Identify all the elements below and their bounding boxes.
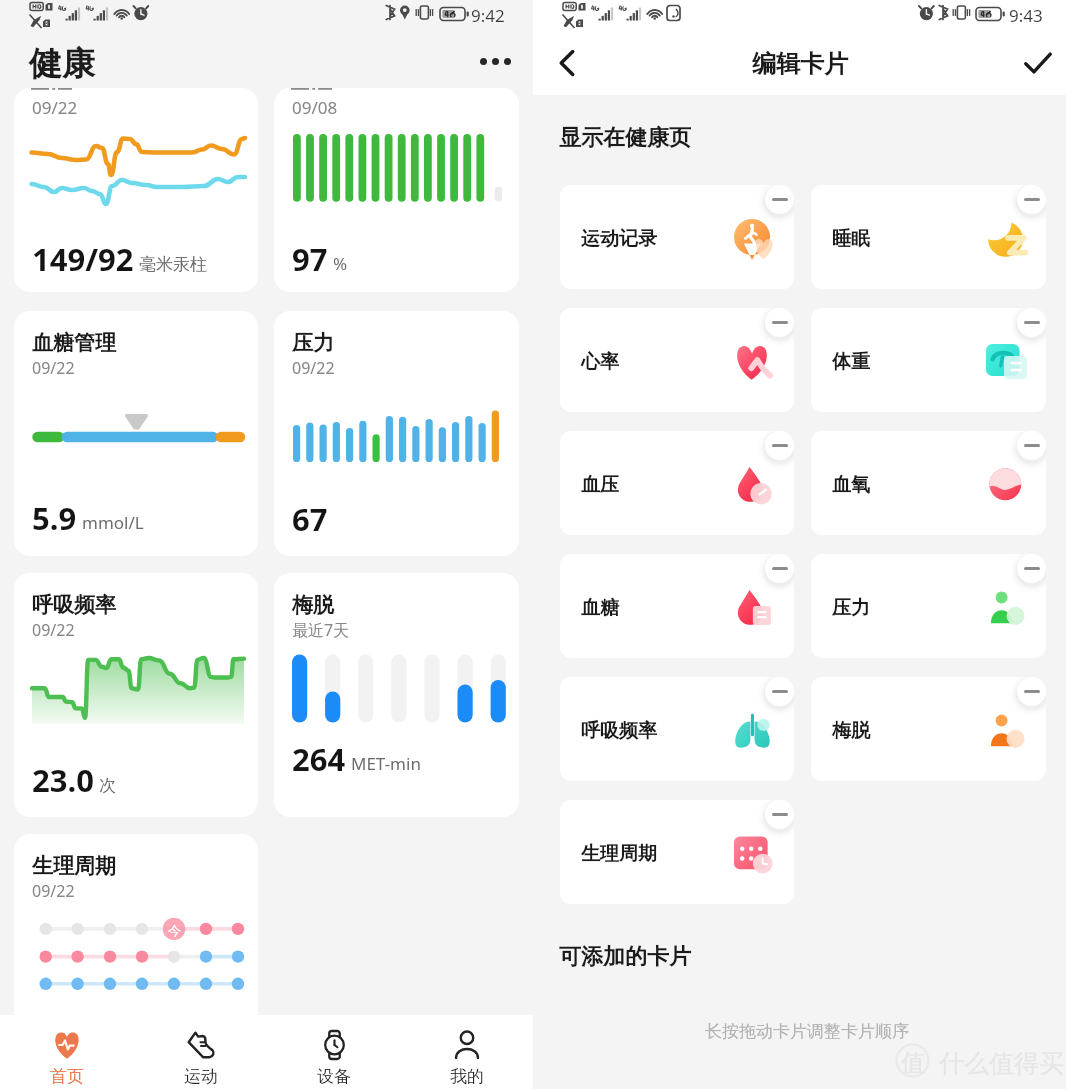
staticText: 血糖管理 [32,330,116,356]
staticText: mmol/L [82,511,144,534]
staticText: 67 [292,498,328,540]
button[interactable]: 呼吸频率 [560,677,794,781]
staticText: 长按拖动卡片调整卡片顺序 [705,1021,909,1042]
button[interactable]: 生理周期 [560,800,794,904]
staticText: 23.0 [32,759,94,801]
button[interactable]: Remove 运动记录 [765,185,794,214]
button[interactable]: 09/08 [274,88,519,292]
button[interactable]: 梅脱 [274,573,519,817]
button[interactable]: 压力 [811,554,1046,658]
staticText: 体重 [832,350,870,374]
staticText: 97 [292,238,328,280]
staticText: 梅脱 [832,719,870,743]
staticText: 呼吸频率 [32,592,116,618]
staticText: 值 [901,1048,925,1078]
button[interactable]: Confirm [1013,38,1063,88]
staticText: 压力 [832,596,870,620]
button[interactable]: Remove 生理周期 [765,800,794,829]
button[interactable]: Remove 睡眠 [1017,185,1046,214]
staticText: 5.9 [32,497,77,539]
staticText: 运动 [184,1066,218,1087]
staticText: 09/22 [292,357,335,379]
button[interactable]: 压力 [274,311,519,556]
staticText: 毫米汞柱 [139,254,207,275]
button[interactable]: 血氧 [811,431,1046,535]
button[interactable]: 运动 [134,1015,267,1089]
button[interactable]: 心率 [560,308,794,412]
staticText: 首页 [50,1066,84,1087]
button[interactable]: 呼吸频率 [14,573,258,817]
staticText: 09/22 [32,880,75,902]
staticText: 血压 [581,473,619,497]
staticText: 我的 [450,1066,484,1087]
staticText: 264 [292,738,346,780]
staticText: 09/22 [32,619,75,641]
button[interactable]: 血糖管理 [14,311,258,556]
staticText: 睡眠 [832,227,870,251]
button[interactable]: 血糖 [560,554,794,658]
button[interactable]: Remove 血氧 [1017,431,1046,460]
staticText: 生理周期 [581,842,657,866]
button[interactable]: 梅脱 [811,677,1046,781]
staticText: 健康 [29,43,95,85]
staticText: 编辑卡片 [752,49,848,79]
staticText: 设备 [317,1066,351,1087]
button[interactable]: 我的 [400,1015,533,1089]
button[interactable]: 首页 [0,1015,134,1089]
button[interactable]: 运动记录 [560,185,794,289]
staticText: MET-min [351,752,421,775]
staticText: 149/92 [32,238,134,280]
staticText: 呼吸频率 [581,719,657,743]
staticText: 生理周期 [32,853,116,879]
staticText: 09/08 [292,96,338,119]
staticText: 心率 [581,350,619,374]
button[interactable]: Remove 梅脱 [1017,677,1046,706]
staticText: 最近7天 [292,619,350,641]
button[interactable]: 09/22 [14,88,258,292]
button[interactable]: 设备 [267,1015,400,1089]
staticText: 9:42 [471,4,505,27]
staticText: 运动记录 [581,227,657,251]
button[interactable]: 血压 [560,431,794,535]
staticText: 09/22 [32,357,75,379]
staticText: 血糖 [581,596,619,620]
staticText: 显示在健康页 [559,124,691,152]
staticText: 可添加的卡片 [559,943,691,971]
button[interactable]: Remove 压力 [1017,554,1046,583]
staticText: 09/22 [32,96,78,119]
button[interactable]: 生理周期 [14,834,258,1078]
button[interactable]: Remove 呼吸频率 [765,677,794,706]
button[interactable]: More options [473,39,517,83]
button[interactable]: Remove 体重 [1017,308,1046,337]
staticText: % [333,252,348,275]
staticText: 今 [168,922,181,938]
staticText: 血氧 [832,473,870,497]
button[interactable]: Remove 血压 [765,431,794,460]
staticText: 梅脱 [292,592,334,618]
button[interactable]: 睡眠 [811,185,1046,289]
staticText: 次 [99,775,116,796]
button[interactable]: Remove 血糖 [765,554,794,583]
button[interactable]: Remove 心率 [765,308,794,337]
staticText: 9:43 [1009,4,1043,27]
staticText: 什么值得买 [939,1048,1064,1079]
button[interactable]: Back [543,38,593,88]
staticText: 压力 [292,330,334,356]
button[interactable]: 体重 [811,308,1046,412]
